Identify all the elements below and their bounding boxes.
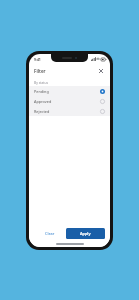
staticText: By status: [34, 80, 49, 84]
staticText: Approved: [34, 99, 100, 104]
staticText: Clear: [45, 231, 55, 236]
staticText: Filter: [34, 68, 46, 74]
button[interactable]: Apply: [66, 228, 105, 239]
staticText: Rejected: [34, 109, 100, 114]
button[interactable]: Rejected: [29, 106, 110, 116]
button[interactable]: Approved: [29, 96, 110, 106]
staticText: Apply: [80, 231, 91, 236]
button[interactable]: Close: [96, 66, 105, 75]
button[interactable]: Pending: [29, 86, 110, 96]
staticText: Pending: [34, 89, 100, 94]
staticText: 9:41: [34, 57, 41, 62]
button[interactable]: Clear: [34, 226, 66, 241]
